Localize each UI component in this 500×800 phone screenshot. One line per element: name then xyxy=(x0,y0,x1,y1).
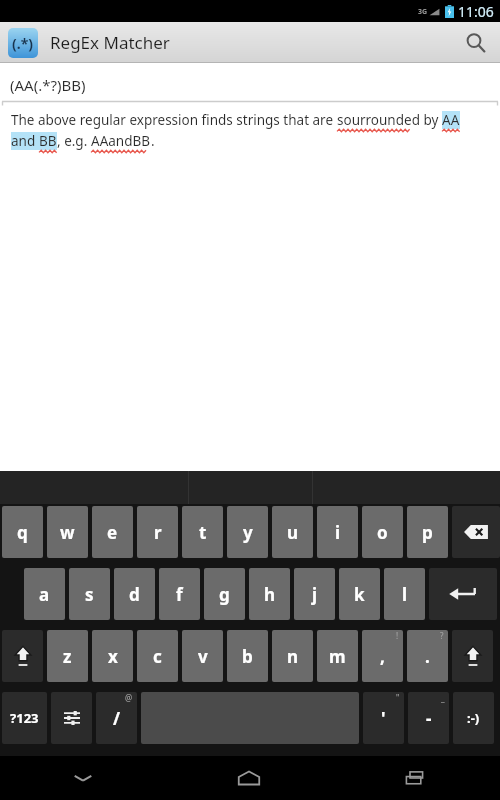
button[interactable]: a xyxy=(24,568,65,620)
button[interactable]: c xyxy=(137,630,178,682)
button[interactable]: n xyxy=(272,630,313,682)
staticText: (.*) xyxy=(12,34,34,53)
staticText: ' xyxy=(381,707,386,730)
staticText: v xyxy=(198,645,208,668)
staticText: BB xyxy=(39,132,57,150)
staticText: k xyxy=(354,583,365,606)
staticText: - xyxy=(426,707,432,730)
staticText: , e.g. xyxy=(57,132,91,150)
staticText: w xyxy=(60,521,75,544)
staticText: . xyxy=(425,645,430,668)
button[interactable]: Input settings xyxy=(51,692,92,744)
staticText: l xyxy=(402,583,408,606)
button[interactable]: :-) xyxy=(453,692,494,744)
button[interactable]: h xyxy=(249,568,290,620)
button[interactable]: ?123 xyxy=(2,692,47,744)
staticText: g xyxy=(219,583,230,606)
button[interactable]: p xyxy=(407,506,448,558)
button[interactable]: ' xyxy=(363,692,404,744)
staticText: r xyxy=(154,521,162,544)
staticText: p xyxy=(422,521,433,544)
staticText: f xyxy=(176,583,183,606)
staticText: x xyxy=(108,645,118,668)
button[interactable]: Shift xyxy=(2,630,43,682)
staticText: :-) xyxy=(467,709,480,727)
button[interactable]: Home xyxy=(166,756,332,800)
button[interactable]: l xyxy=(384,568,425,620)
button[interactable]: x xyxy=(92,630,133,682)
button[interactable]: z xyxy=(47,630,88,682)
staticText: RegEx Matcher xyxy=(50,31,170,54)
staticText: c xyxy=(153,645,162,668)
staticText: AA xyxy=(442,111,460,129)
button[interactable]: m xyxy=(317,630,358,682)
staticText: a xyxy=(39,583,50,606)
staticText: h xyxy=(264,583,276,606)
staticText: 3G xyxy=(418,7,428,17)
staticText: j xyxy=(312,583,318,606)
staticText: AAandBB xyxy=(91,132,151,150)
staticText: z xyxy=(63,645,72,668)
button[interactable]: j xyxy=(294,568,335,620)
button[interactable]: v xyxy=(182,630,223,682)
button[interactable]: k xyxy=(339,568,380,620)
staticText: q xyxy=(17,521,28,544)
staticText: b xyxy=(242,645,253,668)
button[interactable]: y xyxy=(227,506,268,558)
button[interactable]: f xyxy=(159,568,200,620)
button[interactable]: Backspace xyxy=(452,506,500,558)
staticText: ?123 xyxy=(10,709,39,727)
staticText: d xyxy=(129,583,140,606)
button[interactable]: - xyxy=(408,692,449,744)
staticText: and xyxy=(11,132,39,150)
staticText: sourrounded xyxy=(337,111,420,129)
button[interactable]: o xyxy=(362,506,403,558)
button[interactable]: Shift xyxy=(452,630,493,682)
staticText: The above regular expression finds strin… xyxy=(11,111,337,129)
staticText: ? xyxy=(440,630,444,641)
staticText: @ xyxy=(125,692,133,703)
staticText: e xyxy=(107,521,118,544)
button[interactable]: t xyxy=(182,506,223,558)
button[interactable]: Recent apps xyxy=(332,756,500,800)
staticText: s xyxy=(85,583,94,606)
button[interactable]: r xyxy=(137,506,178,558)
button[interactable]: u xyxy=(272,506,313,558)
staticText: i xyxy=(335,521,341,544)
staticText: ! xyxy=(396,630,399,641)
staticText: 11:06 xyxy=(458,2,494,21)
staticText: _ xyxy=(441,692,445,703)
staticText: o xyxy=(377,521,388,544)
button[interactable]: / xyxy=(96,692,137,744)
staticText: (AA(.*?)BB) xyxy=(10,75,86,95)
button[interactable]: i xyxy=(317,506,358,558)
button[interactable]: . xyxy=(407,630,448,682)
staticText: t xyxy=(199,521,207,544)
button[interactable]: Hide keyboard xyxy=(0,756,166,800)
button[interactable]: Search xyxy=(452,22,500,63)
button[interactable]: g xyxy=(204,568,245,620)
staticText: , xyxy=(380,645,385,668)
staticText: / xyxy=(113,707,121,730)
button[interactable]: q xyxy=(2,506,43,558)
button[interactable]: Enter xyxy=(429,568,497,620)
button[interactable]: s xyxy=(69,568,110,620)
button[interactable]: e xyxy=(92,506,133,558)
staticText: m xyxy=(329,645,346,668)
button[interactable]: b xyxy=(227,630,268,682)
button[interactable]: w xyxy=(47,506,88,558)
staticText: u xyxy=(287,521,299,544)
staticText: y xyxy=(243,521,253,544)
staticText: " xyxy=(396,692,400,703)
staticText: n xyxy=(287,645,299,668)
button[interactable]: d xyxy=(114,568,155,620)
button[interactable]: , xyxy=(362,630,403,682)
staticText: by xyxy=(420,111,442,129)
staticText: . xyxy=(151,132,155,150)
